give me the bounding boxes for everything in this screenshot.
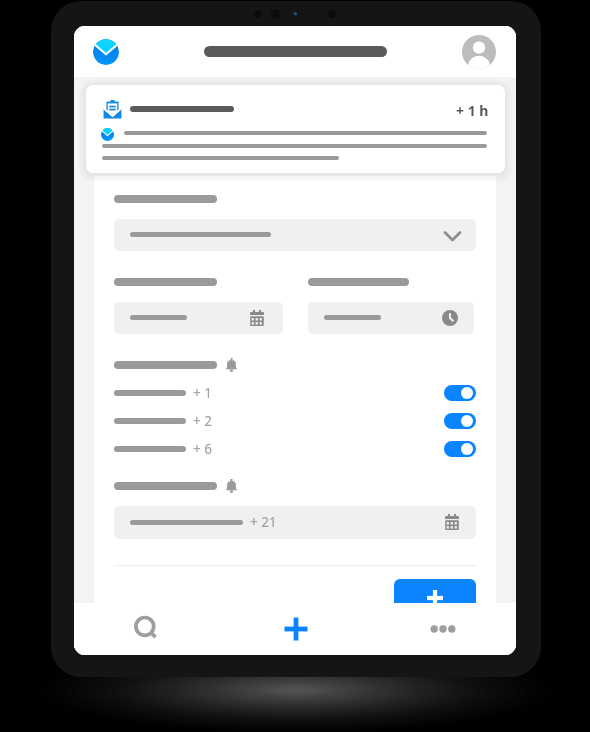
button[interactable] (114, 219, 476, 251)
staticText: + 1 (193, 384, 212, 400)
staticText: + 21 (250, 513, 277, 531)
button[interactable]: More (369, 603, 516, 655)
button[interactable]: + 2 (74, 413, 516, 429)
button[interactable] (308, 302, 474, 334)
button[interactable]: Add (222, 603, 369, 655)
button[interactable]: + 1 h (86, 85, 505, 173)
button[interactable] (114, 302, 283, 334)
button[interactable]: Search (74, 603, 222, 655)
staticText: + 1 h (456, 101, 489, 120)
button[interactable]: App logo (93, 39, 119, 65)
button[interactable]: + 21 (114, 506, 476, 539)
button[interactable]: Account (462, 35, 496, 69)
staticText: + 2 (193, 412, 212, 428)
staticText: + 6 (193, 440, 212, 456)
button[interactable]: + 1 (74, 385, 516, 401)
button[interactable]: + 6 (74, 441, 516, 457)
button[interactable]: Add (394, 579, 476, 623)
